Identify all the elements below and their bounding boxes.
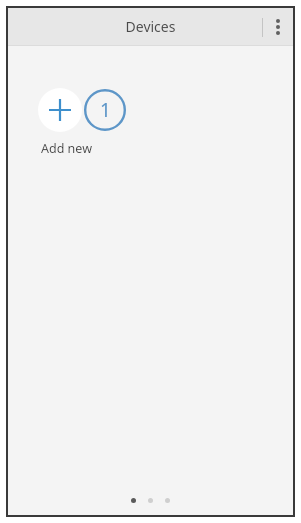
button[interactable]: 1 (38, 88, 126, 157)
button[interactable]: More options (263, 12, 293, 42)
staticText: 1 (100, 97, 111, 123)
staticText: Devices (8, 17, 293, 36)
staticText: Add new (41, 140, 92, 157)
